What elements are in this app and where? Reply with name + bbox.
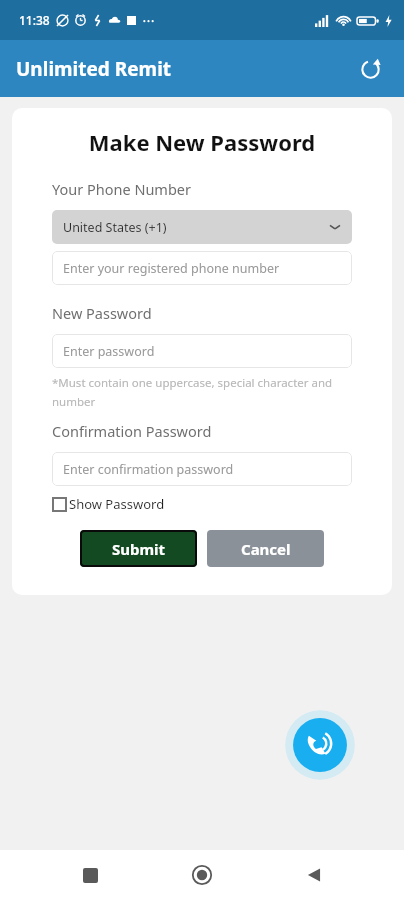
staticText: Enter password — [63, 343, 155, 360]
staticText: Cancel — [241, 539, 291, 559]
button[interactable]: Recents — [68, 853, 112, 897]
staticText: Enter your registered phone number — [63, 260, 280, 277]
staticText: New Password — [52, 303, 152, 323]
staticText: 11:38 — [19, 12, 50, 28]
button[interactable]: Refresh — [348, 47, 392, 91]
button[interactable]: Enter password — [52, 334, 352, 368]
staticText: Enter confirmation password — [63, 461, 234, 478]
staticText: Confirmation Password — [52, 421, 212, 441]
button[interactable]: Show Password — [52, 493, 165, 515]
staticText: Submit — [112, 539, 166, 559]
button[interactable]: Submit — [80, 530, 197, 567]
staticText: *Must contain one uppercase, special cha… — [52, 375, 352, 409]
button[interactable]: Enter your registered phone number — [52, 251, 352, 285]
button[interactable]: Cancel — [207, 530, 324, 567]
button[interactable]: Call support — [285, 710, 355, 780]
button[interactable]: Home — [180, 853, 224, 897]
staticText: Unlimited Remit — [16, 56, 172, 82]
button[interactable]: United States (+1) — [52, 210, 352, 244]
staticText: United States (+1) — [63, 219, 167, 236]
staticText: Make New Password — [52, 127, 352, 157]
button[interactable]: Back — [292, 853, 336, 897]
staticText: Show Password — [69, 495, 165, 513]
staticText: Your Phone Number — [52, 179, 192, 199]
button[interactable]: Enter confirmation password — [52, 452, 352, 486]
